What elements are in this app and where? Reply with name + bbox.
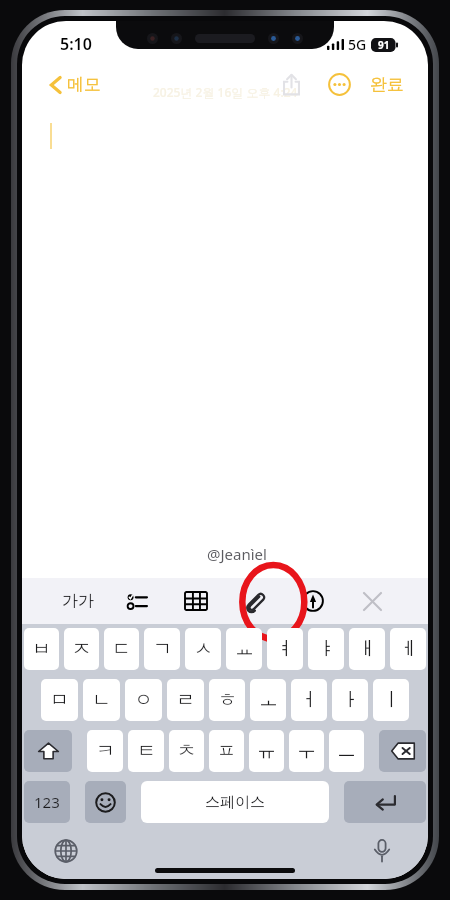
button[interactable]: ㅑ: [308, 628, 344, 670]
staticText: ㄷ: [112, 637, 131, 661]
button[interactable]: Change keyboard language: [46, 831, 86, 871]
staticText: ㅁ: [50, 688, 69, 712]
button[interactable]: ㅔ: [390, 628, 426, 670]
button[interactable]: Shift: [24, 730, 72, 772]
staticText: @Jeanìel: [207, 544, 267, 564]
button[interactable]: ㅓ: [291, 679, 327, 721]
button[interactable]: 메모: [44, 70, 107, 99]
button[interactable]: Dictation: [362, 831, 402, 871]
staticText: 메모: [67, 74, 101, 95]
button[interactable]: Table: [176, 581, 216, 621]
button[interactable]: ㅋ: [87, 730, 123, 772]
staticText: ㄱ: [153, 637, 172, 661]
button[interactable]: Return: [344, 781, 426, 823]
staticText: ㅋ: [96, 739, 115, 763]
staticText: 가가: [62, 591, 94, 611]
staticText: ㅊ: [177, 739, 196, 763]
button[interactable]: ㅊ: [169, 730, 204, 772]
button[interactable]: ㅅ: [185, 628, 221, 670]
button[interactable]: ㅜ: [289, 730, 324, 772]
staticText: ㅕ: [276, 637, 295, 661]
button[interactable]: ㅗ: [250, 679, 286, 721]
staticText: 5:10: [60, 33, 92, 55]
button[interactable]: Backspace: [379, 730, 426, 772]
staticText: ㅔ: [399, 637, 418, 661]
button[interactable]: Close keyboard: [352, 581, 392, 621]
button[interactable]: Markup: [293, 581, 333, 621]
staticText: ㅛ: [235, 637, 254, 661]
button[interactable]: ㄱ: [144, 628, 180, 670]
staticText: ㄹ: [176, 688, 195, 712]
staticText: 91: [378, 38, 390, 52]
staticText: ㅜ: [297, 739, 316, 763]
button[interactable]: Share: [274, 67, 308, 101]
staticText: ㅏ: [341, 688, 360, 712]
staticText: ㅍ: [217, 739, 236, 763]
button[interactable]: ㅎ: [209, 679, 245, 721]
staticText: ㅑ: [317, 637, 336, 661]
staticText: ㅓ: [300, 688, 319, 712]
button[interactable]: ㅂ: [24, 628, 59, 670]
button[interactable]: ㅁ: [41, 679, 78, 721]
button[interactable]: 스페이스: [141, 781, 329, 823]
staticText: 123: [34, 792, 60, 812]
button[interactable]: 완료: [366, 70, 408, 99]
staticText: 완료: [370, 74, 404, 95]
button[interactable]: ㅣ: [373, 679, 409, 721]
button[interactable]: ㅕ: [267, 628, 303, 670]
button[interactable]: Checklist: [117, 581, 157, 621]
button[interactable]: Emoji: [85, 781, 126, 823]
staticText: ㅎ: [218, 688, 237, 712]
button[interactable]: ㅠ: [249, 730, 284, 772]
button[interactable]: ㄷ: [104, 628, 139, 670]
staticText: ㅌ: [137, 739, 156, 763]
button[interactable]: ㅇ: [125, 679, 162, 721]
staticText: 5G: [348, 35, 367, 54]
staticText: 2025년 2월 16일 오후 4:24: [153, 84, 298, 100]
staticText: ㅗ: [259, 688, 278, 712]
staticText: ㅇ: [134, 688, 153, 712]
staticText: ㅈ: [72, 637, 91, 661]
button[interactable]: 123: [24, 781, 70, 823]
button[interactable]: More options: [322, 67, 356, 101]
staticText: ㅠ: [257, 739, 276, 763]
button[interactable]: ㅌ: [128, 730, 164, 772]
staticText: ㅐ: [358, 637, 377, 661]
button[interactable]: ㅛ: [226, 628, 262, 670]
staticText: ㄴ: [92, 688, 111, 712]
button[interactable]: ㅡ: [329, 730, 364, 772]
staticText: ㅣ: [382, 688, 401, 712]
button[interactable]: ㅐ: [349, 628, 385, 670]
staticText: ㅂ: [32, 637, 51, 661]
staticText: ㅡ: [337, 739, 356, 763]
staticText: ㅅ: [194, 637, 213, 661]
button[interactable]: ㄹ: [167, 679, 204, 721]
staticText: 스페이스: [205, 793, 265, 812]
button[interactable]: ㅍ: [209, 730, 244, 772]
button[interactable]: ㅏ: [332, 679, 368, 721]
button[interactable]: ㄴ: [83, 679, 120, 721]
button[interactable]: Attach file: [234, 581, 274, 621]
button[interactable]: ㅈ: [64, 628, 99, 670]
button[interactable]: Text format: [58, 581, 98, 621]
